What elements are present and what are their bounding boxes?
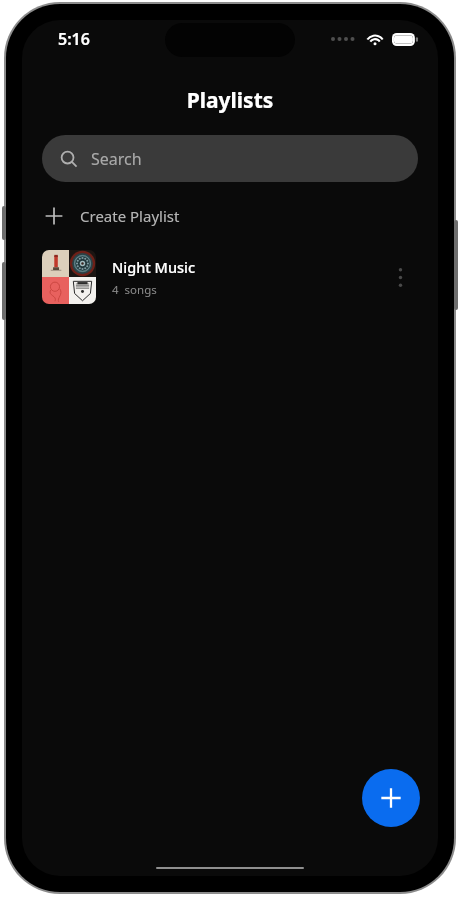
button[interactable]: More options [382, 259, 418, 295]
staticText: Playlists [22, 86, 438, 115]
button[interactable]: Night Music [22, 246, 438, 308]
button[interactable]: Create Playlist [22, 198, 438, 234]
staticText: Night Music [112, 257, 196, 277]
staticText: Search [91, 148, 142, 170]
staticText: Create Playlist [80, 206, 180, 226]
staticText: 4 songs [112, 282, 157, 298]
staticText: 5:16 [58, 28, 90, 50]
button[interactable]: Add playlist [362, 769, 420, 827]
button[interactable]: Search [42, 135, 418, 182]
